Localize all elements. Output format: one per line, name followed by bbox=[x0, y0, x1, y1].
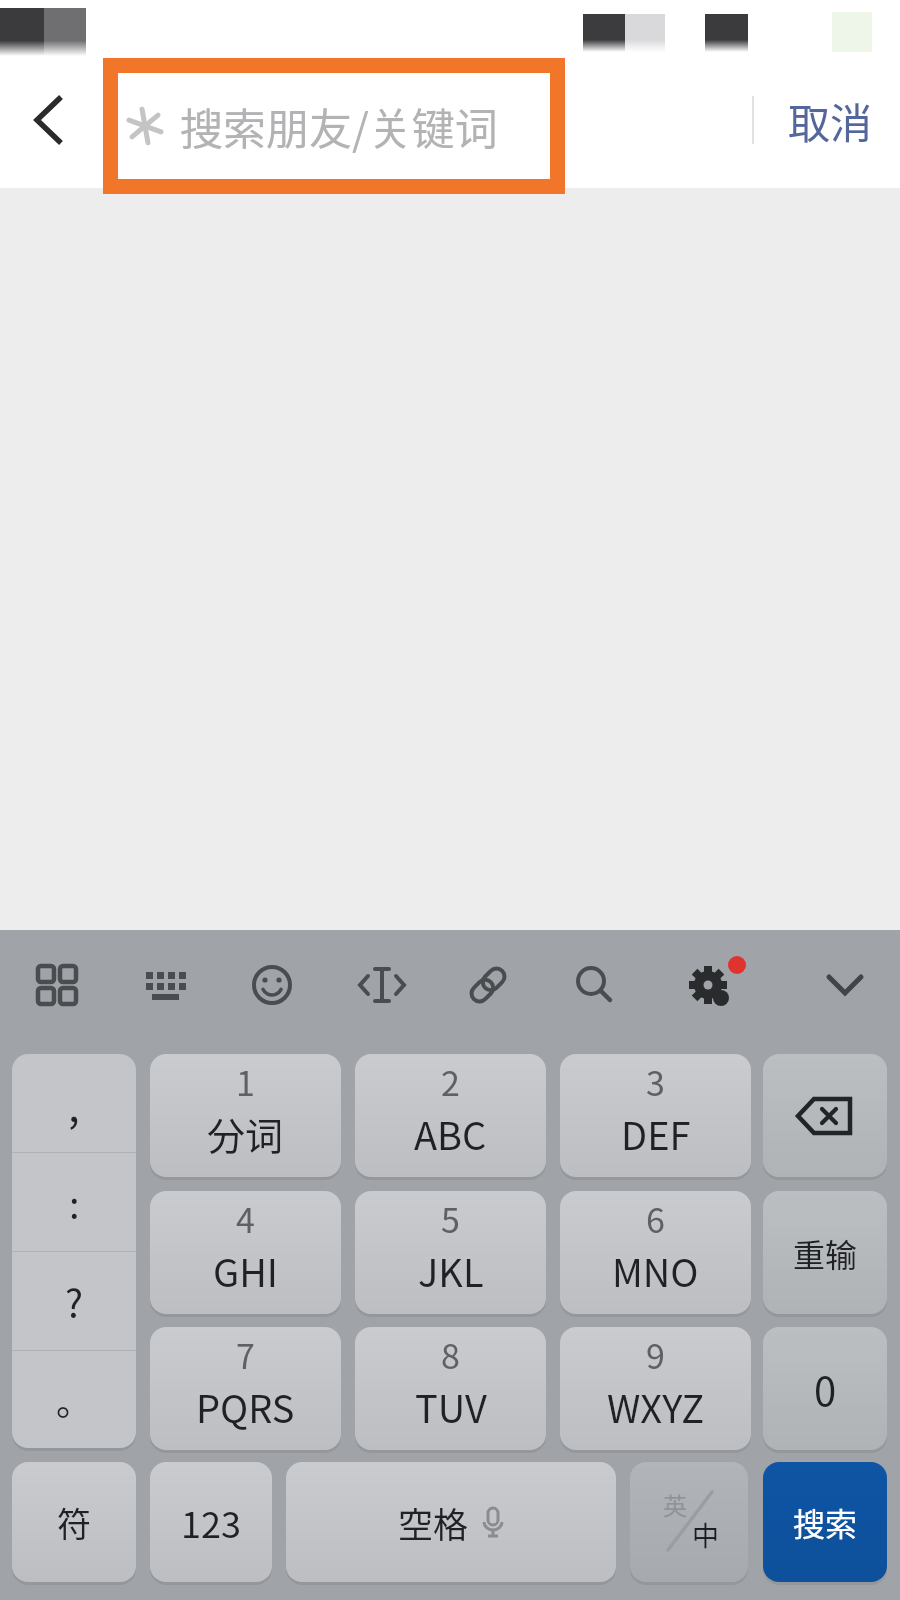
staticText: MNO bbox=[612, 1243, 699, 1298]
button[interactable]: 英 bbox=[630, 1462, 748, 1582]
button[interactable]: : bbox=[12, 1153, 136, 1251]
button[interactable]: ? bbox=[12, 1252, 136, 1350]
button[interactable] bbox=[227, 940, 317, 1030]
staticText: ? bbox=[65, 1274, 84, 1329]
button[interactable] bbox=[763, 1054, 887, 1177]
staticText: 9 bbox=[646, 1330, 665, 1379]
staticText: DEF bbox=[621, 1106, 691, 1161]
button[interactable]: 。 bbox=[12, 1351, 136, 1448]
staticText: WXYZ bbox=[607, 1379, 705, 1434]
button[interactable] bbox=[800, 940, 890, 1030]
staticText: 。 bbox=[56, 1374, 93, 1426]
button[interactable] bbox=[30, 94, 70, 146]
button[interactable] bbox=[337, 940, 427, 1030]
staticText: 中 bbox=[692, 1515, 719, 1554]
staticText: 1 bbox=[236, 1057, 255, 1106]
staticText: 搜索 bbox=[793, 1499, 858, 1545]
staticText: PQRS bbox=[196, 1379, 295, 1434]
staticText: : bbox=[69, 1175, 80, 1230]
button[interactable] bbox=[121, 940, 211, 1030]
button[interactable]: 8 bbox=[355, 1327, 546, 1450]
button[interactable]: 搜索 bbox=[763, 1462, 887, 1582]
button[interactable]: 符 bbox=[12, 1462, 136, 1582]
staticText: 分词 bbox=[207, 1106, 284, 1161]
button[interactable] bbox=[12, 940, 102, 1030]
button[interactable]: 6 bbox=[560, 1191, 751, 1314]
button[interactable] bbox=[663, 940, 753, 1030]
button[interactable]: 9 bbox=[560, 1327, 751, 1450]
staticText: 0 bbox=[814, 1360, 837, 1418]
staticText: 取消 bbox=[788, 90, 873, 151]
button[interactable]: 搜索朋友/关键词 bbox=[118, 73, 550, 179]
staticText: 8 bbox=[441, 1330, 460, 1379]
staticText: GHI bbox=[213, 1243, 278, 1298]
button[interactable]: 4 bbox=[150, 1191, 341, 1314]
staticText: JKL bbox=[418, 1243, 484, 1298]
staticText: 3 bbox=[646, 1057, 665, 1106]
staticText: 英 bbox=[663, 1487, 687, 1522]
staticText: 6 bbox=[646, 1194, 665, 1243]
staticText: 2 bbox=[441, 1057, 460, 1106]
staticText: TUV bbox=[415, 1379, 487, 1434]
button[interactable] bbox=[443, 940, 533, 1030]
staticText: 7 bbox=[236, 1330, 255, 1379]
staticText: 5 bbox=[441, 1194, 460, 1243]
staticText: 重输 bbox=[793, 1230, 858, 1276]
button[interactable]: 重输 bbox=[763, 1191, 887, 1314]
button[interactable]: 取消 bbox=[775, 88, 885, 152]
button[interactable]: 0 bbox=[763, 1327, 887, 1450]
staticText: 搜索朋友/关键词 bbox=[180, 95, 498, 157]
staticText: , bbox=[68, 1073, 80, 1134]
staticText: ABC bbox=[414, 1106, 487, 1161]
staticText: 4 bbox=[236, 1194, 255, 1243]
staticText: 符 bbox=[57, 1498, 91, 1547]
button[interactable]: 2 bbox=[355, 1054, 546, 1177]
button[interactable]: 3 bbox=[560, 1054, 751, 1177]
button[interactable]: 1 bbox=[150, 1054, 341, 1177]
button[interactable] bbox=[550, 940, 640, 1030]
button[interactable]: , bbox=[12, 1054, 136, 1152]
staticText: 123 bbox=[181, 1496, 241, 1548]
button[interactable]: 5 bbox=[355, 1191, 546, 1314]
staticText: 空格 bbox=[398, 1497, 469, 1548]
button[interactable]: 7 bbox=[150, 1327, 341, 1450]
button[interactable]: 123 bbox=[150, 1462, 272, 1582]
button[interactable]: 空格 bbox=[286, 1462, 616, 1582]
